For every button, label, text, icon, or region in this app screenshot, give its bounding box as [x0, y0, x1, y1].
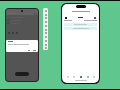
button[interactable]: Settings	[94, 17, 96, 19]
button[interactable]: Tab 2	[71, 74, 76, 79]
button[interactable]	[7, 19, 37, 21]
button[interactable]: Tool	[44, 13, 47, 16]
button[interactable]: Tool	[44, 24, 47, 27]
button[interactable]	[7, 16, 37, 18]
button[interactable]: Tab 4	[85, 74, 90, 79]
button[interactable]: Tool	[44, 39, 47, 42]
button[interactable]: Tab 5	[91, 74, 96, 79]
button[interactable]: Tool	[44, 43, 47, 46]
button[interactable]	[7, 22, 37, 24]
button[interactable]: Tool	[44, 28, 47, 31]
button[interactable]: Tab 1	[65, 74, 70, 79]
button[interactable]: Tool	[44, 20, 47, 23]
button[interactable]: Tool	[44, 46, 47, 49]
button[interactable]: Menu	[65, 17, 67, 19]
button[interactable]	[64, 23, 97, 26]
button[interactable]: Tool	[44, 31, 47, 34]
button[interactable]: Tab 3	[78, 74, 83, 79]
button[interactable]: Tool	[44, 16, 47, 19]
button[interactable]	[64, 27, 97, 30]
button[interactable]: Tool	[44, 35, 47, 38]
button[interactable]: Tool	[44, 9, 47, 12]
